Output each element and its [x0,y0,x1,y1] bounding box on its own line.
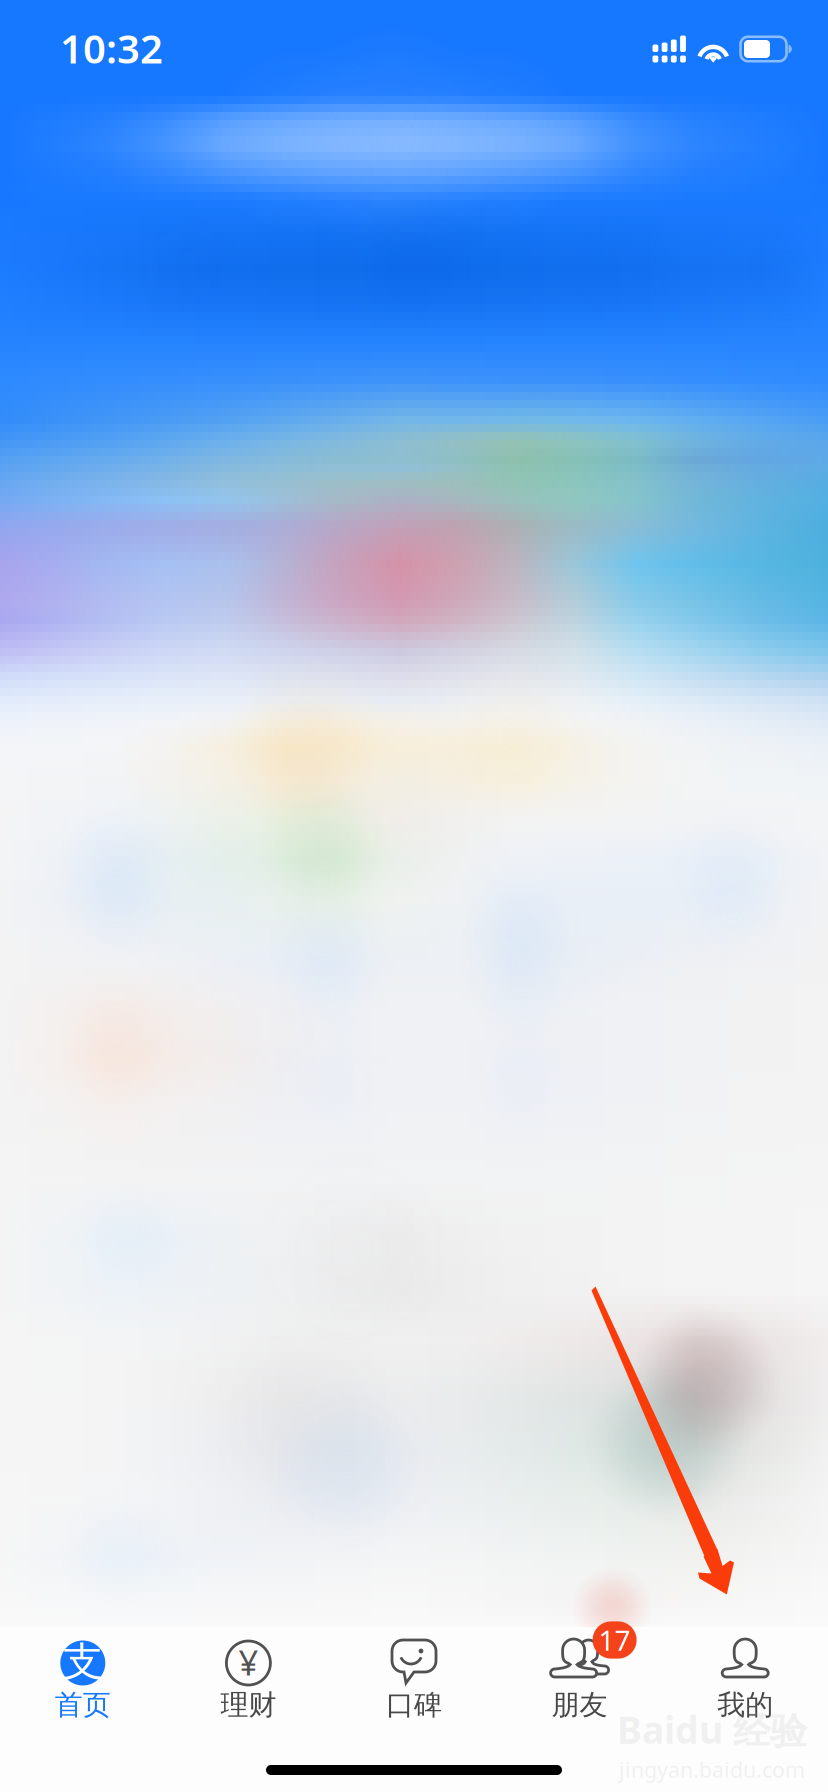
staticText: Baidu 经验 [617,1704,807,1754]
staticText: jingyan.baidu.com [619,1755,805,1783]
button[interactable]: 17 [497,1633,662,1719]
staticText: 17 [599,1621,631,1659]
staticText: 理财 [220,1688,276,1722]
staticText: 朋友 [552,1688,608,1722]
staticText: 支 [63,1637,103,1686]
button[interactable]: ¥ [166,1633,331,1719]
staticText: ¥ [238,1639,258,1685]
staticText: 口碑 [386,1688,442,1722]
button[interactable]: 我的 [662,1633,828,1719]
button[interactable]: 支 [0,1633,166,1719]
button[interactable]: 口碑 [331,1633,497,1719]
staticText: 10:32 [60,21,163,74]
staticText: 我的 [717,1688,773,1722]
staticText: 首页 [55,1688,111,1722]
